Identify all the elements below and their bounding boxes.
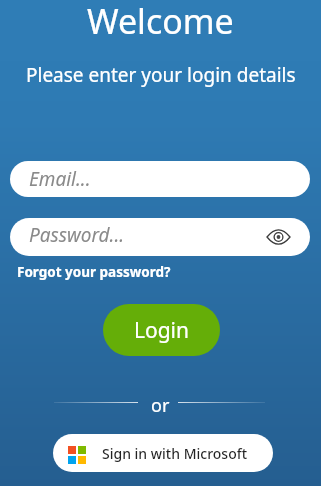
button[interactable]: Password... (10, 218, 310, 256)
button[interactable]: Email... (10, 161, 310, 197)
staticText: Please enter your login details (26, 62, 296, 88)
staticText: Email... (29, 166, 91, 192)
button[interactable]: Forgot your password? (17, 263, 171, 281)
button[interactable]: Login (103, 304, 220, 356)
staticText: Sign in with Microsoft (102, 444, 248, 463)
staticText: Welcome (87, 0, 234, 44)
button[interactable]: Sign in with Microsoft (53, 434, 273, 472)
staticText: or (151, 393, 170, 418)
staticText: Password... (29, 222, 125, 248)
staticText: Login (134, 316, 190, 345)
